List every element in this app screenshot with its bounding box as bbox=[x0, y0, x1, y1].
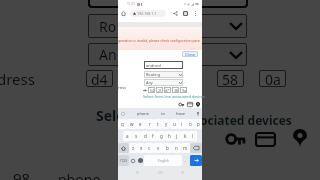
button[interactable]: phone bbox=[137, 111, 150, 116]
button[interactable]: android bbox=[144, 61, 183, 69]
staticText: n bbox=[175, 145, 178, 151]
button[interactable]: i bbox=[178, 119, 186, 129]
staticText: g bbox=[160, 133, 163, 139]
button[interactable]: 0a bbox=[259, 70, 286, 87]
button[interactable]: Close bbox=[182, 51, 198, 57]
staticText: 11:21 bbox=[127, 2, 136, 6]
button[interactable]: l bbox=[189, 131, 197, 141]
staticText: d bbox=[144, 133, 147, 139]
button[interactable]: 54 bbox=[148, 87, 155, 93]
button[interactable]: Passwords bbox=[224, 131, 245, 147]
button[interactable]: Space bbox=[144, 155, 182, 166]
button[interactable]: a bbox=[123, 131, 132, 141]
button[interactable]: w bbox=[127, 119, 136, 129]
button[interactable]: have bbox=[176, 111, 186, 116]
staticText: p bbox=[197, 121, 200, 127]
button[interactable]: s bbox=[132, 131, 141, 141]
button[interactable]: Routing bbox=[144, 71, 183, 78]
button[interactable]: 2f bbox=[156, 87, 163, 93]
staticText: r bbox=[149, 121, 151, 127]
staticText: i bbox=[181, 121, 183, 127]
button[interactable]: Payment methods bbox=[187, 102, 193, 107]
staticText: m bbox=[183, 145, 188, 151]
staticText: z bbox=[132, 145, 135, 151]
button[interactable]: Voice input bbox=[195, 111, 200, 116]
button[interactable]: An bbox=[88, 43, 247, 66]
button[interactable]: e bbox=[136, 119, 145, 129]
button[interactable]: Ro bbox=[88, 14, 247, 38]
staticText: ociated devices bbox=[200, 112, 292, 128]
staticText: Routing bbox=[146, 72, 161, 77]
staticText: l bbox=[192, 133, 194, 139]
button[interactable]: Share bbox=[171, 8, 180, 18]
button[interactable]: Addresses bbox=[196, 102, 200, 108]
button[interactable]: Addresses bbox=[293, 129, 307, 148]
staticText: c bbox=[148, 145, 151, 151]
staticText: android bbox=[146, 63, 161, 68]
button[interactable]: Payment methods bbox=[255, 132, 276, 147]
staticText: English bbox=[158, 159, 169, 163]
staticText: b bbox=[166, 145, 169, 151]
button[interactable]: Shift bbox=[118, 143, 129, 153]
button[interactable]: m bbox=[181, 143, 190, 153]
button[interactable]: 38 bbox=[172, 87, 179, 93]
button[interactable]: d bbox=[141, 131, 149, 141]
staticText: a bbox=[126, 133, 129, 139]
button[interactable]: Passwords bbox=[178, 102, 184, 107]
button[interactable]: Select front-line associated devices bbox=[143, 94, 205, 99]
button[interactable]: o bbox=[186, 119, 194, 129]
button[interactable]: p bbox=[194, 119, 202, 129]
staticText: w bbox=[130, 121, 134, 127]
staticText: 98 bbox=[13, 168, 31, 180]
staticText: ress bbox=[118, 85, 127, 91]
button[interactable]: r bbox=[145, 119, 154, 129]
staticText: 0a bbox=[265, 70, 281, 87]
button[interactable]: Emoji bbox=[129, 155, 136, 166]
button[interactable]: Go bbox=[190, 155, 202, 166]
button[interactable]: ?123 bbox=[118, 155, 129, 166]
button[interactable]: to bbox=[161, 111, 165, 116]
button[interactable]: j bbox=[173, 131, 181, 141]
button[interactable]: z bbox=[129, 143, 137, 153]
button[interactable]: Tabs bbox=[181, 8, 190, 18]
staticText: 2f bbox=[158, 88, 162, 93]
button[interactable]: g bbox=[157, 131, 165, 141]
button[interactable]: 9a bbox=[180, 87, 187, 93]
button[interactable]: Home bbox=[119, 8, 128, 18]
button[interactable]: k bbox=[181, 131, 189, 141]
button[interactable]: n bbox=[172, 143, 181, 153]
button[interactable]: c bbox=[145, 143, 154, 153]
staticText: v bbox=[157, 145, 160, 151]
button[interactable]: 58 bbox=[217, 70, 244, 87]
staticText: x bbox=[140, 145, 143, 151]
button[interactable]: y bbox=[162, 119, 170, 129]
staticText: y bbox=[165, 121, 168, 127]
button[interactable]: d7 bbox=[164, 87, 171, 93]
button[interactable]: h bbox=[165, 131, 173, 141]
button[interactable]: f bbox=[149, 131, 157, 141]
staticText: s bbox=[135, 133, 138, 139]
button[interactable]: 192.168.1.1 bbox=[130, 10, 166, 17]
staticText: Ro bbox=[99, 17, 117, 36]
staticText: k bbox=[184, 133, 187, 139]
button[interactable]: u bbox=[170, 119, 178, 129]
button[interactable]: Any bbox=[144, 79, 183, 86]
button[interactable]: x bbox=[137, 143, 145, 153]
staticText: 58 bbox=[222, 70, 239, 87]
button[interactable]: d4 bbox=[86, 70, 113, 87]
button[interactable]: t bbox=[154, 119, 162, 129]
staticText: 9a bbox=[182, 88, 186, 93]
staticText: 38 bbox=[174, 88, 178, 93]
staticText: ?123 bbox=[120, 159, 127, 163]
staticText: 54 bbox=[150, 88, 154, 93]
button[interactable]: Sele bbox=[96, 106, 125, 125]
button[interactable]: Backspace bbox=[190, 143, 202, 153]
button[interactable]: Settings bbox=[136, 155, 144, 166]
button[interactable]: v bbox=[154, 143, 163, 153]
button[interactable]: b bbox=[163, 143, 172, 153]
button[interactable]: More options bbox=[191, 8, 199, 18]
staticText: t bbox=[157, 121, 159, 127]
button[interactable]: q bbox=[118, 119, 127, 129]
button[interactable]: Google bbox=[120, 111, 125, 116]
